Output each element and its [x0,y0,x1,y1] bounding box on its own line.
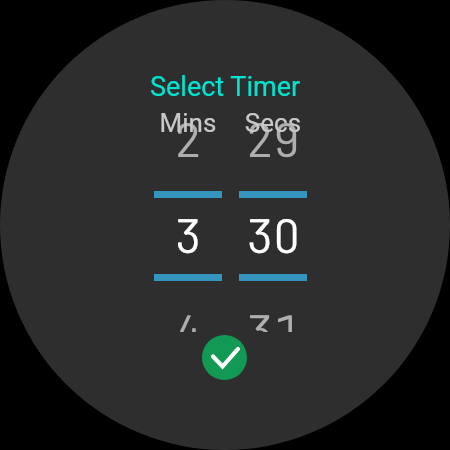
staticText: 4 [155,301,223,332]
button[interactable]: Confirm timer [202,335,247,380]
staticText: Select Timer [150,71,301,103]
button[interactable]: Seconds [239,96,307,332]
staticText: 30 [240,205,308,263]
staticText: Mins [154,108,222,134]
staticText: 2 [155,109,223,167]
staticText: Secs [239,108,307,134]
staticText: 31 [240,301,308,332]
button[interactable]: Minutes [154,96,222,332]
staticText: 29 [240,109,308,167]
staticText: 3 [155,205,223,263]
